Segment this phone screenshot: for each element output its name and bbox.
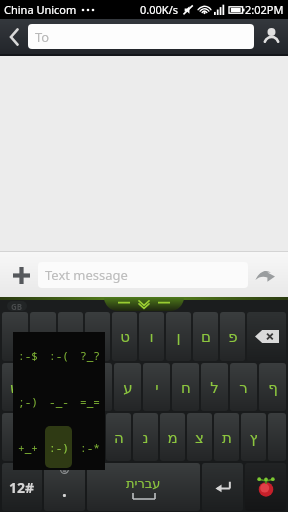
staticText: China Unicom	[4, 2, 77, 17]
button[interactable]: ;-)	[15, 380, 41, 422]
button[interactable]: ע	[114, 363, 141, 411]
staticText: :-*	[80, 440, 100, 455]
staticText: פ	[228, 328, 238, 345]
staticText: ל	[210, 379, 219, 396]
button[interactable]: ח	[172, 363, 199, 411]
button[interactable]: Send	[248, 260, 282, 290]
staticText: ס	[59, 429, 69, 446]
button[interactable]: :-(	[45, 334, 72, 376]
staticText: GB	[11, 301, 23, 311]
staticText: ע	[123, 379, 133, 396]
staticText: ה	[114, 429, 124, 446]
button[interactable]: ד	[30, 363, 56, 411]
button[interactable]: ו	[139, 312, 164, 361]
button[interactable]: Enter	[202, 463, 243, 511]
button[interactable]: Contacts	[254, 19, 288, 54]
button[interactable]	[58, 312, 83, 361]
staticText: :-)	[49, 440, 69, 455]
button[interactable]: מ	[160, 413, 185, 461]
button[interactable]: ץ	[241, 413, 266, 461]
staticText: עברית	[126, 476, 161, 491]
button[interactable]: +_+	[15, 426, 41, 468]
button[interactable]: =_=	[76, 380, 103, 422]
staticText: +_+	[18, 440, 38, 455]
staticText: ן	[176, 328, 181, 345]
staticText: ת	[222, 429, 232, 446]
button[interactable]: ל	[201, 363, 228, 411]
button[interactable]: ג	[58, 363, 84, 411]
button[interactable]: .	[44, 463, 85, 511]
button[interactable]: צ	[187, 413, 212, 461]
button[interactable]: :-*	[76, 426, 103, 468]
staticText: צ	[195, 429, 204, 446]
staticText: =_=	[80, 394, 100, 409]
button[interactable]	[30, 312, 56, 361]
button[interactable]: ז	[23, 413, 49, 461]
staticText: 12#	[9, 478, 35, 497]
staticText: ט	[120, 328, 130, 345]
button[interactable]: ת	[214, 413, 239, 461]
button[interactable]: Add attachment	[6, 260, 36, 290]
button[interactable]: ף	[259, 363, 286, 411]
button[interactable]: ס	[51, 413, 77, 461]
staticText: ב	[87, 429, 96, 446]
button[interactable]: ט	[112, 312, 137, 361]
button[interactable]: ן	[166, 312, 191, 361]
button[interactable]: כ	[86, 363, 112, 411]
button[interactable]: To	[28, 24, 254, 49]
staticText: ף	[268, 379, 278, 396]
button[interactable]: נ	[133, 413, 158, 461]
staticText: .	[62, 479, 67, 502]
button[interactable]: Hide keyboard	[104, 297, 184, 311]
staticText: :-$	[18, 348, 38, 363]
staticText: Text message	[45, 266, 128, 284]
staticText: ;-)	[18, 394, 38, 409]
button[interactable]: ר	[230, 363, 257, 411]
button[interactable]: י	[143, 363, 170, 411]
staticText: :-(	[49, 348, 69, 363]
staticText: -_-	[49, 394, 69, 409]
staticText: To	[35, 28, 50, 46]
staticText: מ	[167, 429, 178, 446]
button[interactable]: Switch input method	[245, 463, 286, 511]
staticText: ו	[149, 328, 154, 345]
button[interactable]: Back	[0, 19, 28, 54]
button[interactable]: ?_?	[76, 334, 103, 376]
button[interactable]	[85, 312, 110, 361]
button[interactable]: :-$	[15, 334, 41, 376]
staticText: ?_?	[80, 348, 100, 363]
button[interactable]: :-)	[45, 426, 72, 468]
staticText: ח	[181, 379, 191, 396]
button[interactable]: ב	[79, 413, 104, 461]
button[interactable]: Backspace	[247, 312, 286, 361]
staticText: ץ	[249, 429, 258, 446]
staticText: ם	[201, 328, 211, 345]
button[interactable]: ש	[2, 363, 28, 411]
button[interactable]	[268, 413, 286, 461]
staticText: 2:02PM	[245, 2, 284, 17]
button[interactable]: Text message	[38, 262, 248, 288]
staticText: ש	[10, 379, 21, 396]
button[interactable]: ה	[106, 413, 131, 461]
button[interactable]: 12#	[2, 463, 42, 511]
button[interactable]: ם	[193, 312, 218, 361]
button[interactable]: פ	[220, 312, 245, 361]
staticText: נ	[142, 429, 149, 446]
button[interactable]: עברית	[87, 463, 200, 511]
staticText: י	[155, 379, 159, 396]
button[interactable]: -_-	[45, 380, 72, 422]
button[interactable]	[2, 413, 21, 461]
button[interactable]	[2, 312, 28, 361]
staticText: 0.00K/s	[140, 2, 178, 17]
staticText: ר	[239, 379, 248, 396]
